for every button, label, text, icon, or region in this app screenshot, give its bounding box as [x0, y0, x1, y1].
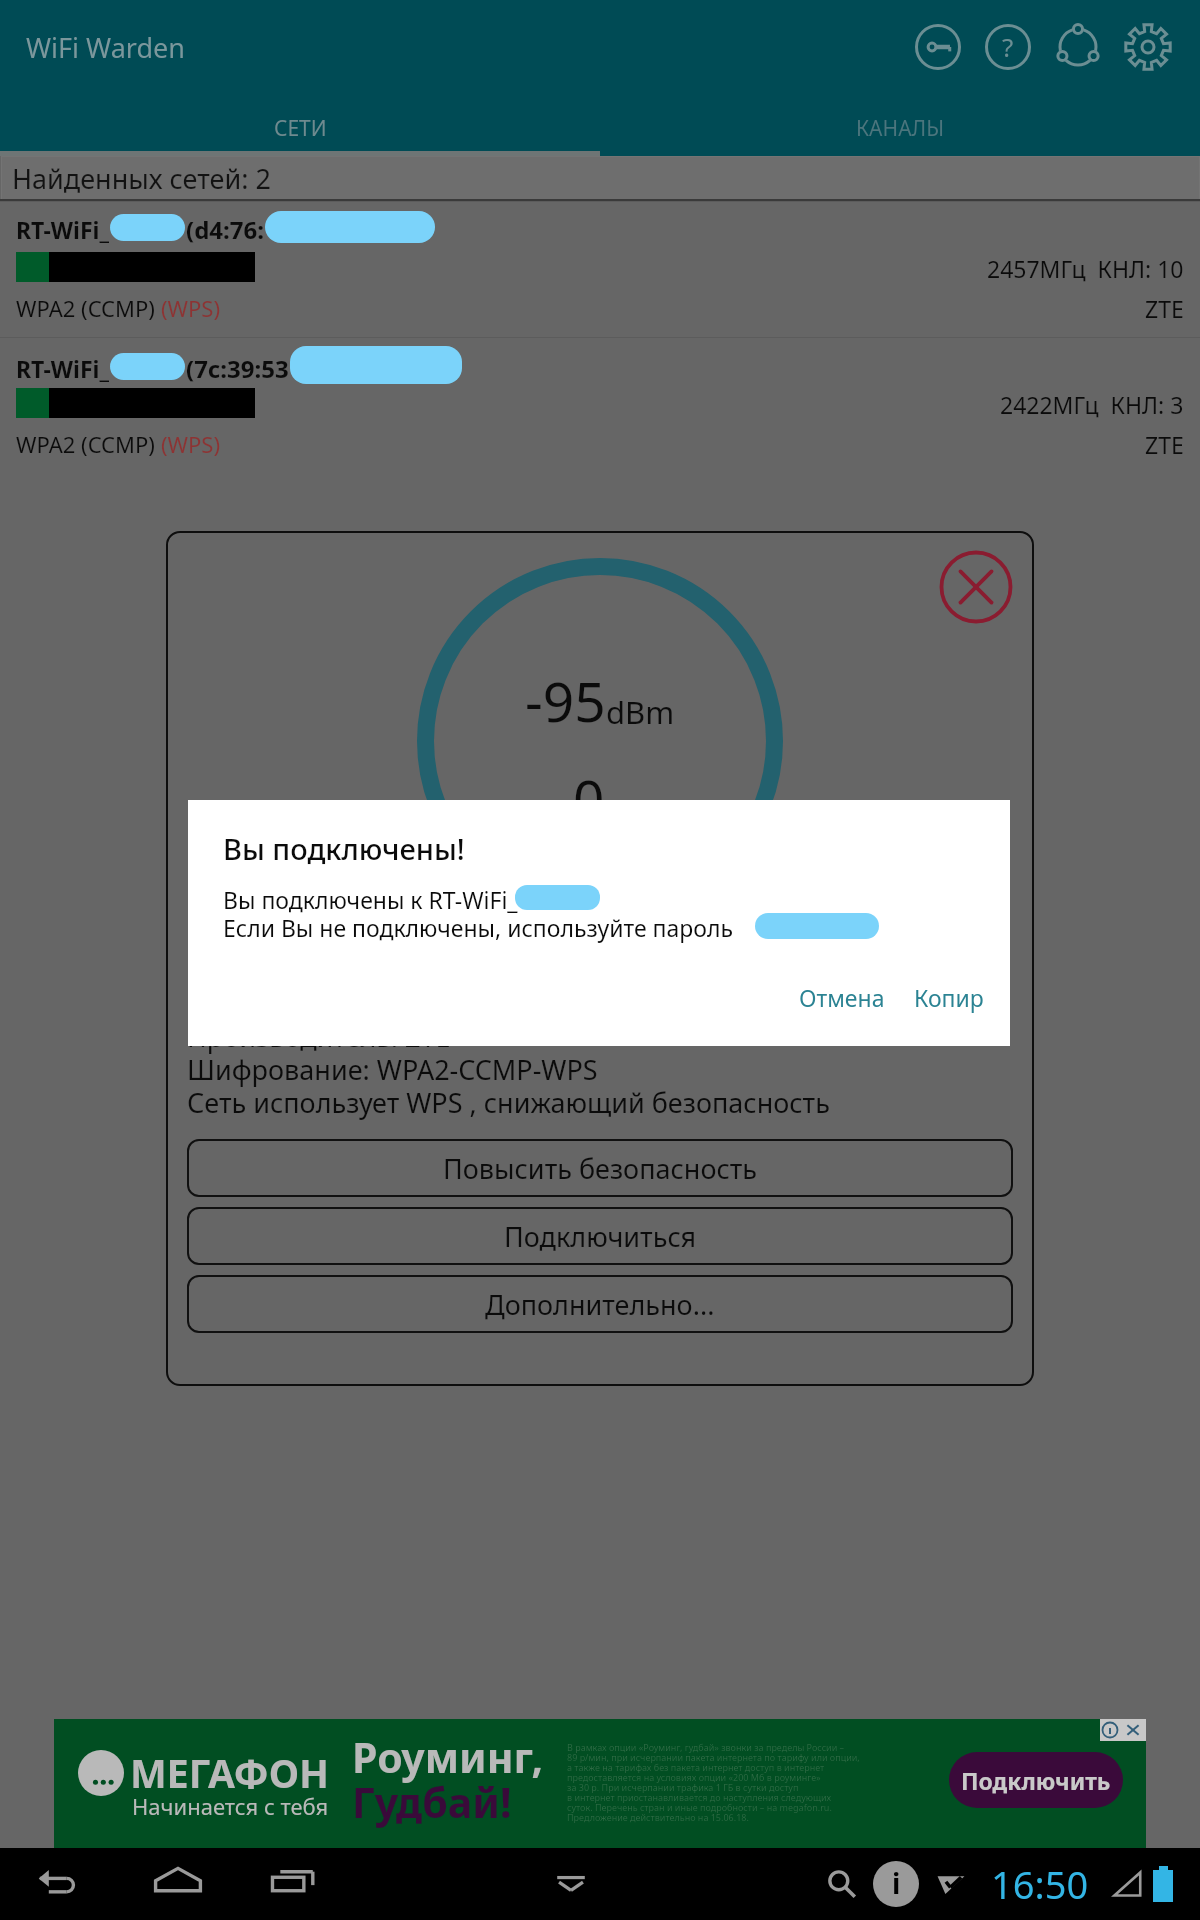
button[interactable]: Close [938, 549, 1014, 625]
button[interactable]: Повысить безопасность [187, 1139, 1013, 1197]
staticText: КАНАЛЫ [856, 114, 945, 143]
staticText: i [892, 1864, 901, 1902]
staticText: WPA2 (CCMP) [16, 429, 161, 459]
staticText: Подключиться [504, 1218, 696, 1255]
button[interactable]: Saved passwords [903, 12, 973, 82]
button[interactable]: Recents [266, 1854, 326, 1914]
staticText: 2422МГц КНЛ: 3 [1000, 389, 1184, 420]
staticText: Подключить [961, 1765, 1111, 1796]
staticText: RT-WiFi_ [16, 353, 109, 384]
staticText: ZTE [1145, 293, 1184, 324]
staticText: ZTE [1145, 429, 1184, 460]
staticText: Вы подключены к RT-WiFi_ [223, 884, 518, 915]
button[interactable]: RT-WiFi_ [0, 337, 1200, 473]
button[interactable]: Settings [1113, 12, 1183, 82]
staticText: Дополнительно... [485, 1286, 715, 1323]
button[interactable]: СЕТИ [0, 94, 600, 156]
staticText: Начинается с тебя [132, 1791, 329, 1821]
staticText: 16:50 [991, 1858, 1089, 1910]
staticText: (d4:76: [186, 213, 264, 246]
staticText: Копир [914, 982, 984, 1013]
button[interactable]: Подключиться [187, 1207, 1013, 1265]
staticText: WPA2 (CCMP) [16, 293, 161, 323]
staticText: Вы подключены! [223, 829, 465, 868]
staticText: Если Вы не подключены, используйте парол… [223, 912, 739, 943]
button[interactable]: Back [30, 1854, 90, 1914]
button[interactable]: Копир [904, 976, 994, 1019]
staticText: Найденных сетей: 2 [12, 160, 271, 197]
staticText: Производитель: ZTE Шифрование: WPA2-CCMP… [187, 1018, 830, 1121]
staticText: % [605, 793, 628, 830]
button[interactable]: Подключить [949, 1752, 1123, 1808]
staticText: МЕГАФОН [130, 1746, 330, 1799]
staticText: Повысить безопасность [443, 1150, 758, 1187]
staticText: В рамках опции «Роуминг, гудбай» звонки … [567, 1741, 860, 1823]
staticText: WiFi Warden [26, 29, 185, 66]
staticText: Гудбай! [352, 1774, 512, 1830]
staticText: RT-WiFi_ [16, 214, 109, 245]
staticText: 0 [573, 761, 605, 836]
staticText: Роуминг, [352, 1729, 544, 1785]
staticText: ? [1002, 29, 1014, 64]
staticText: СЕТИ [274, 114, 327, 143]
staticText: (7c:39:53 [186, 352, 289, 385]
button[interactable]: Home [148, 1854, 208, 1914]
button[interactable]: КАНАЛЫ [600, 94, 1200, 156]
button[interactable]: МЕГАФОН [54, 1719, 1146, 1848]
staticText: 2457МГц КНЛ: 10 [987, 253, 1184, 284]
staticText: Отмена [799, 982, 885, 1013]
button[interactable]: Дополнительно... [187, 1275, 1013, 1333]
button[interactable]: RT-WiFi_ [0, 201, 1200, 337]
button[interactable]: Help [973, 12, 1043, 82]
staticText: (WPS) [161, 429, 221, 459]
staticText: -95 [525, 663, 606, 738]
button[interactable]: Share [1043, 12, 1113, 82]
staticText: dBm [606, 691, 675, 733]
button[interactable]: Отмена [789, 976, 895, 1019]
button[interactable]: Hide keyboard [541, 1854, 601, 1914]
staticText: (WPS) [161, 293, 221, 323]
